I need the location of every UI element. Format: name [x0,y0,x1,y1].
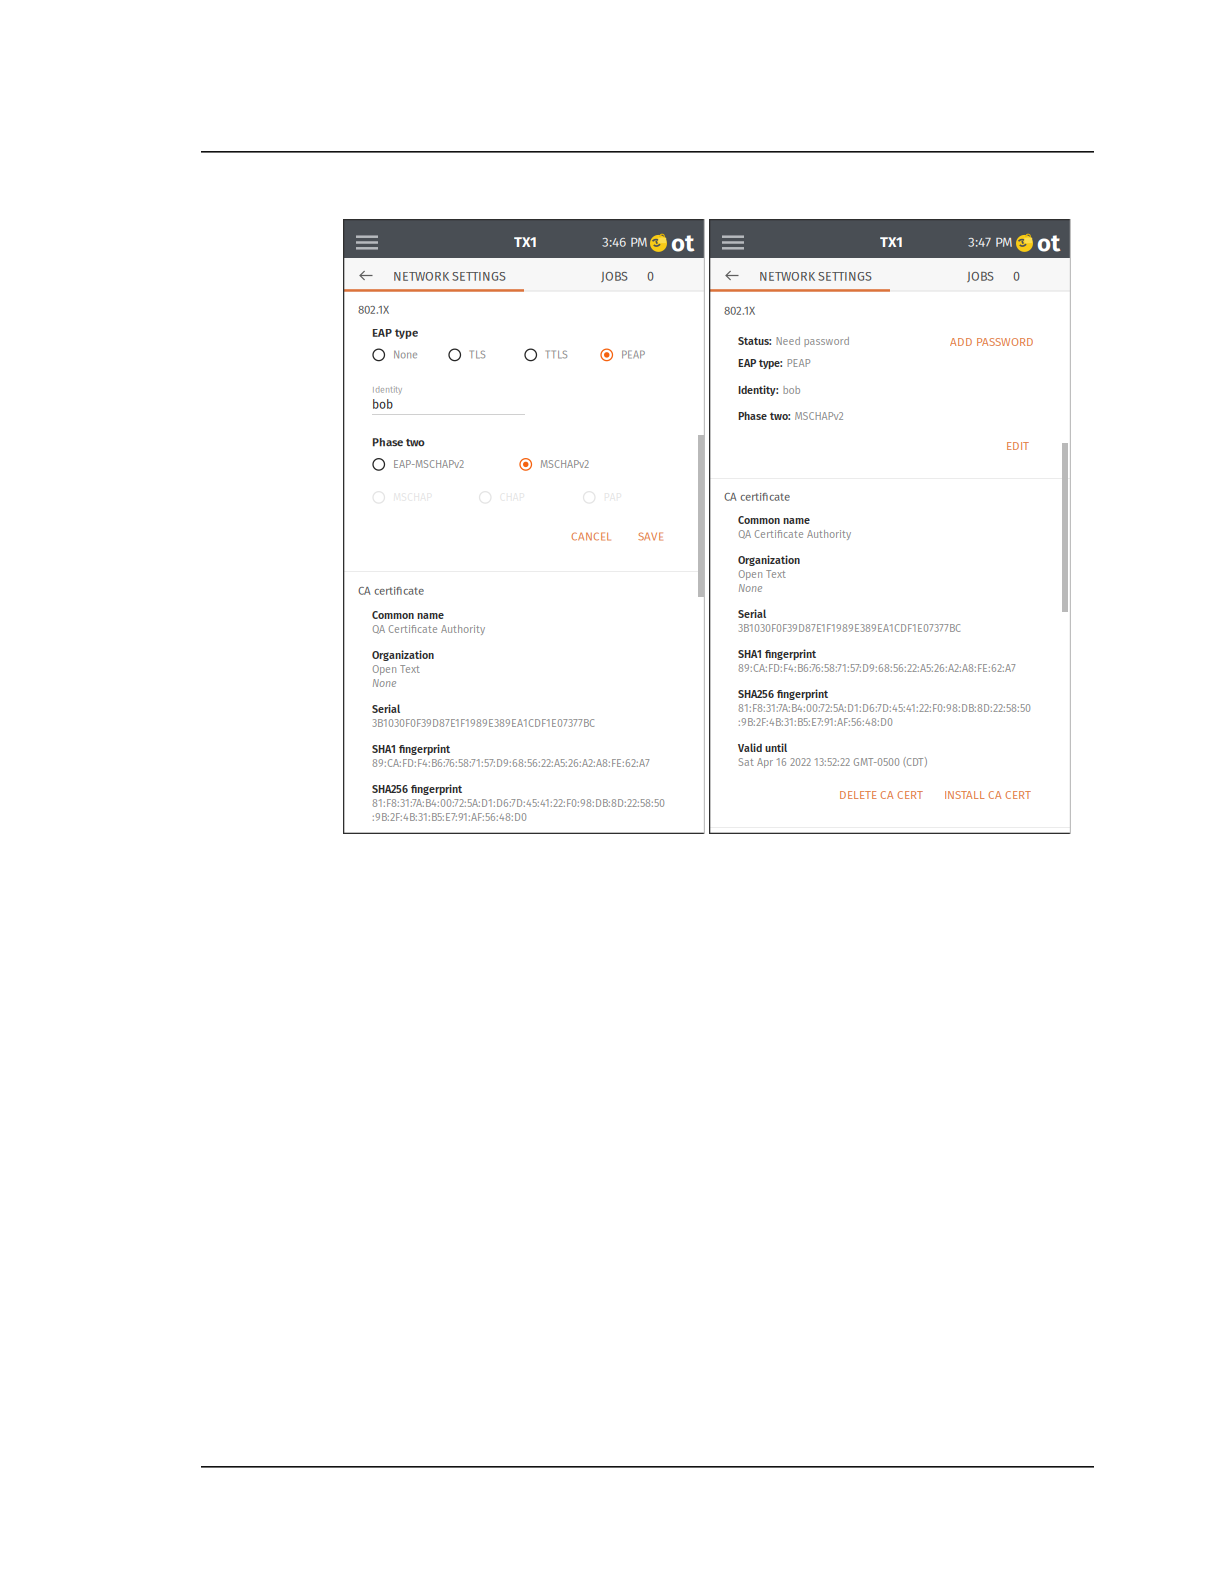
staticText: INSTALL CA CERT [944,788,1031,802]
staticText: PEAP [786,357,810,370]
staticText: Organization [738,554,800,567]
staticText: 0 [1013,269,1020,284]
staticText: QA Certificate Authority [372,623,485,636]
button[interactable]: ADD PASSWORD [945,331,1039,353]
staticText: 89:CA:FD:F4:B6:76:58:71:57:D9:68:56:22:A… [372,757,650,770]
staticText: Identity [372,384,402,395]
staticText: Common name [372,609,444,622]
staticText: Identity: [738,384,779,397]
button[interactable]: Menu [720,232,746,252]
staticText: ot [1037,229,1060,258]
button[interactable]: DELETE CA CERT [834,784,928,806]
staticText: JOBS [967,269,994,284]
staticText: None [738,582,763,595]
button[interactable]: NETWORK SETTINGS [710,258,890,292]
staticText: Common name [738,514,810,527]
staticText: 0 [647,269,654,284]
staticText: MSCHAPv2 [540,458,589,471]
staticText: bob [372,397,393,412]
staticText: NETWORK SETTINGS [393,269,506,284]
staticText: None [393,348,418,361]
staticText: Phase two [372,435,425,449]
staticText: bob [782,384,800,397]
staticText: 81:F8:31:7A:B4:00:72:5A:D1:D6:7D:45:41:2… [738,702,1031,715]
staticText: EAP-MSCHAPv2 [393,458,464,471]
staticText: Open Text [738,568,786,581]
staticText: JOBS [601,269,628,284]
button[interactable]: JOBS [524,258,704,292]
staticText: TLS [469,348,486,361]
staticText: DELETE CA CERT [839,788,923,802]
button[interactable]: PAP [583,491,621,504]
button[interactable]: EDIT [1001,435,1034,457]
button[interactable]: NETWORK SETTINGS [344,258,524,292]
staticText: :9B:2F:4B:31:B5:E7:91:AF:56:48:D0 [738,716,893,729]
staticText: Phase two: [738,410,791,423]
button[interactable]: None [372,348,418,361]
staticText: 3:46 PM [602,234,648,250]
button[interactable]: TTLS [524,348,568,361]
staticText: SHA256 fingerprint [738,688,828,701]
staticText: 81:F8:31:7A:B4:00:72:5A:D1:D6:7D:45:41:2… [372,797,665,810]
staticText: SHA1 fingerprint [372,743,450,756]
staticText: MSCHAP [393,491,432,504]
staticText: CANCEL [571,529,612,544]
staticText: SHA256 fingerprint [372,783,462,796]
button[interactable]: Back [359,269,374,282]
button[interactable]: Back [725,269,740,282]
staticText: Status: [738,335,772,348]
staticText: EDIT [1006,439,1029,453]
staticText: CHAP [499,491,524,504]
staticText: Serial [738,608,766,621]
staticText: None [372,677,397,690]
staticText: Organization [372,649,434,662]
button[interactable]: INSTALL CA CERT [939,784,1036,806]
button[interactable]: CANCEL [566,525,617,548]
staticText: TTLS [545,348,568,361]
button[interactable]: MSCHAPv2 [519,458,589,471]
staticText: CA certificate [724,490,790,504]
button[interactable]: TLS [448,348,486,361]
button[interactable]: Menu [354,232,380,252]
staticText: EAP type [372,326,418,340]
staticText: Need password [775,335,849,348]
staticText: :9B:2F:4B:31:B5:E7:91:AF:56:48:D0 [372,811,527,824]
staticText: EAP type: [738,357,783,370]
staticText: 3B1030F0F39D87E1F1989E389EA1CDF1E07377BC [372,717,595,730]
staticText: Serial [372,703,400,716]
staticText: 802.1X [724,304,755,318]
staticText: TX1 [514,233,537,251]
staticText: MSCHAPv2 [794,410,843,423]
staticText: 3:47 PM [968,234,1013,250]
button[interactable]: CHAP [479,491,524,504]
staticText: Open Text [372,663,420,676]
button[interactable]: SAVE [633,525,669,548]
staticText: SAVE [638,529,664,544]
staticText: ADD PASSWORD [950,335,1034,349]
staticText: 3B1030F0F39D87E1F1989E389EA1CDF1E07377BC [738,622,961,635]
staticText: TX1 [880,233,903,251]
staticText: QA Certificate Authority [738,528,851,541]
staticText: 89:CA:FD:F4:B6:76:58:71:57:D9:68:56:22:A… [738,662,1016,675]
staticText: 802.1X [358,303,389,317]
staticText: SHA1 fingerprint [738,648,816,661]
staticText: Valid until [738,742,787,755]
staticText: PAP [603,491,621,504]
staticText: PEAP [621,348,645,361]
button[interactable]: JOBS [890,258,1070,292]
staticText: NETWORK SETTINGS [759,269,872,284]
staticText: Sat Apr 16 2022 13:52:22 GMT-0500 (CDT) [738,756,927,769]
button[interactable]: MSCHAP [372,491,432,504]
staticText: CA certificate [358,584,424,598]
button[interactable]: EAP-MSCHAPv2 [372,458,464,471]
staticText: ot [671,229,694,258]
button[interactable]: PEAP [600,348,645,361]
